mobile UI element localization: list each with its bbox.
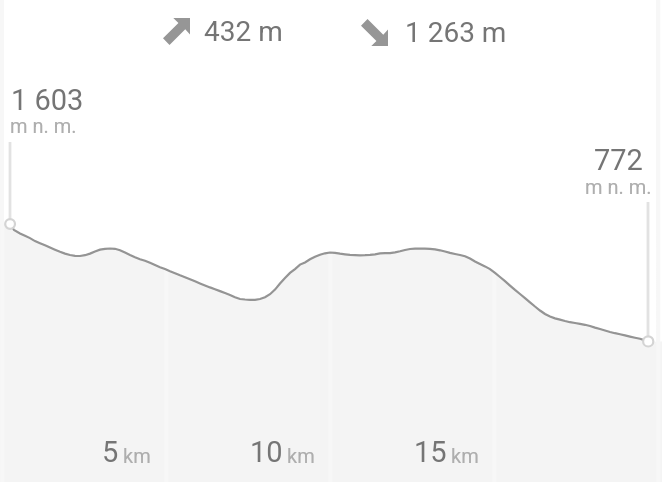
staticText: km (451, 444, 479, 467)
button[interactable]: 5 (57, 435, 147, 469)
staticText: 10 (250, 435, 283, 469)
staticText: 1 263 m (405, 16, 507, 49)
staticText: 15 (414, 435, 447, 469)
other: Total descent (361, 19, 388, 46)
staticText: km (123, 444, 151, 467)
other: Total ascent (163, 18, 190, 45)
staticText: m n. m. (10, 114, 77, 137)
button[interactable]: 10 (221, 435, 311, 469)
button[interactable]: Total ascent (155, 10, 291, 54)
staticText: km (287, 444, 315, 467)
button[interactable]: Total descent (353, 11, 511, 55)
staticText: 772 (594, 143, 643, 177)
staticText: 1 603 (11, 83, 84, 117)
button[interactable]: 15 (385, 435, 475, 469)
staticText: 432 m (204, 15, 283, 48)
staticText: 5 (102, 435, 119, 469)
staticText: m n. m. (585, 175, 652, 198)
